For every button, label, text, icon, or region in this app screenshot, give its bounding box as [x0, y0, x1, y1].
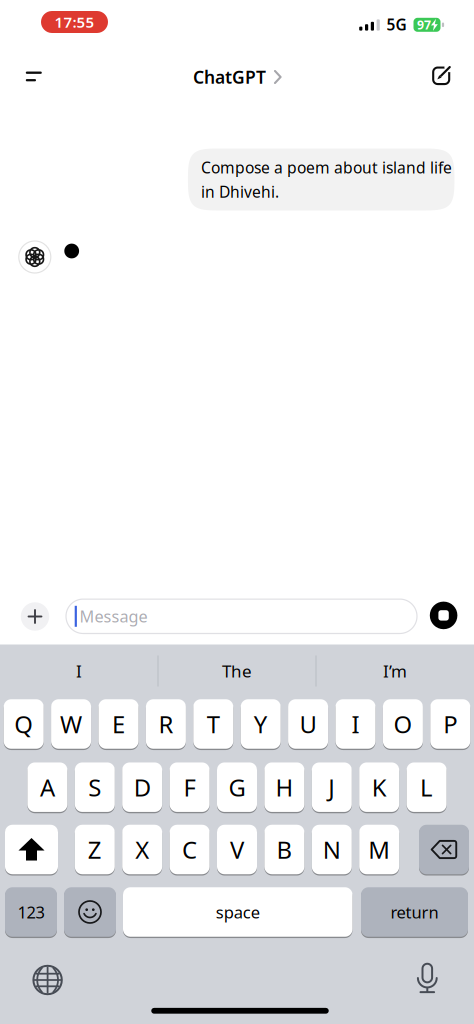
button[interactable]: ChatGPT: [193, 65, 282, 89]
button[interactable]: Y: [241, 698, 281, 750]
button[interactable]: D: [122, 761, 162, 813]
button[interactable]: W: [51, 698, 91, 750]
button[interactable]: A: [27, 761, 67, 813]
button[interactable]: G: [217, 761, 257, 813]
staticText: Z: [88, 833, 102, 866]
staticText: 5G: [386, 14, 406, 35]
staticText: S: [88, 771, 101, 803]
button[interactable]: U: [288, 698, 328, 750]
staticText: B: [276, 833, 292, 866]
staticText: O: [393, 708, 412, 740]
staticText: 97: [417, 16, 431, 33]
button[interactable]: Q: [4, 698, 44, 750]
button[interactable]: N: [312, 824, 352, 875]
button[interactable]: M: [359, 824, 399, 875]
staticText: K: [372, 771, 387, 803]
staticText: Y: [254, 708, 268, 740]
staticText: L: [420, 771, 433, 803]
button[interactable]: I: [335, 698, 375, 750]
button[interactable]: Open sidebar: [11, 54, 55, 98]
staticText: return: [390, 901, 438, 923]
staticText: T: [207, 708, 220, 740]
button[interactable]: I’m: [320, 649, 470, 693]
staticText: I: [76, 659, 82, 683]
button[interactable]: Shift: [5, 824, 58, 875]
button[interactable]: I: [4, 649, 154, 693]
button[interactable]: S: [75, 761, 115, 813]
button[interactable]: Dictate: [417, 963, 437, 993]
button[interactable]: K: [359, 761, 399, 813]
button[interactable]: C: [170, 824, 210, 875]
staticText: R: [158, 708, 173, 740]
button[interactable]: J: [312, 761, 352, 813]
staticText: Message: [79, 605, 147, 627]
staticText: 123: [17, 901, 44, 923]
staticText: X: [135, 833, 149, 866]
staticText: M: [368, 833, 390, 866]
button[interactable]: V: [217, 824, 257, 875]
staticText: D: [134, 771, 151, 803]
staticText: ChatGPT: [193, 65, 266, 89]
button[interactable]: H: [264, 761, 304, 813]
button[interactable]: E: [98, 698, 138, 750]
staticText: C: [182, 833, 197, 866]
staticText: I: [351, 708, 359, 740]
button[interactable]: Z: [75, 824, 115, 875]
button[interactable]: Add attachment: [21, 602, 49, 631]
button[interactable]: P: [430, 698, 470, 750]
staticText: The: [222, 659, 252, 683]
button[interactable]: Message: [66, 599, 417, 633]
button[interactable]: L: [407, 761, 447, 813]
staticText: space: [216, 901, 260, 923]
staticText: N: [323, 833, 341, 866]
button[interactable]: X: [122, 824, 162, 875]
staticText: V: [230, 833, 244, 866]
button[interactable]: Next keyboard: [33, 966, 62, 994]
staticText: I’m: [383, 659, 407, 683]
staticText: A: [40, 771, 55, 803]
button[interactable]: O: [383, 698, 423, 750]
staticText: U: [300, 708, 317, 740]
button[interactable]: The: [162, 649, 312, 693]
staticText: 17:55: [54, 12, 94, 32]
button[interactable]: Stop generating: [430, 602, 457, 629]
staticText: P: [443, 708, 457, 740]
button[interactable]: T: [193, 698, 233, 750]
button[interactable]: R: [146, 698, 186, 750]
button[interactable]: 123: [5, 886, 57, 938]
button[interactable]: space: [123, 886, 352, 938]
staticText: J: [328, 771, 335, 803]
staticText: G: [228, 771, 245, 803]
button[interactable]: F: [170, 761, 210, 813]
staticText: W: [60, 708, 82, 740]
button[interactable]: New chat: [419, 54, 463, 98]
staticText: in Dhivehi.: [201, 181, 279, 202]
staticText: E: [112, 708, 125, 740]
button[interactable]: Emoji: [64, 886, 116, 938]
button[interactable]: B: [264, 824, 304, 875]
staticText: H: [275, 771, 293, 803]
button[interactable]: Delete: [419, 824, 469, 875]
button[interactable]: return: [361, 886, 468, 938]
staticText: F: [184, 771, 196, 803]
staticText: Q: [14, 708, 33, 740]
staticText: Compose a poem about island life: [201, 157, 452, 178]
